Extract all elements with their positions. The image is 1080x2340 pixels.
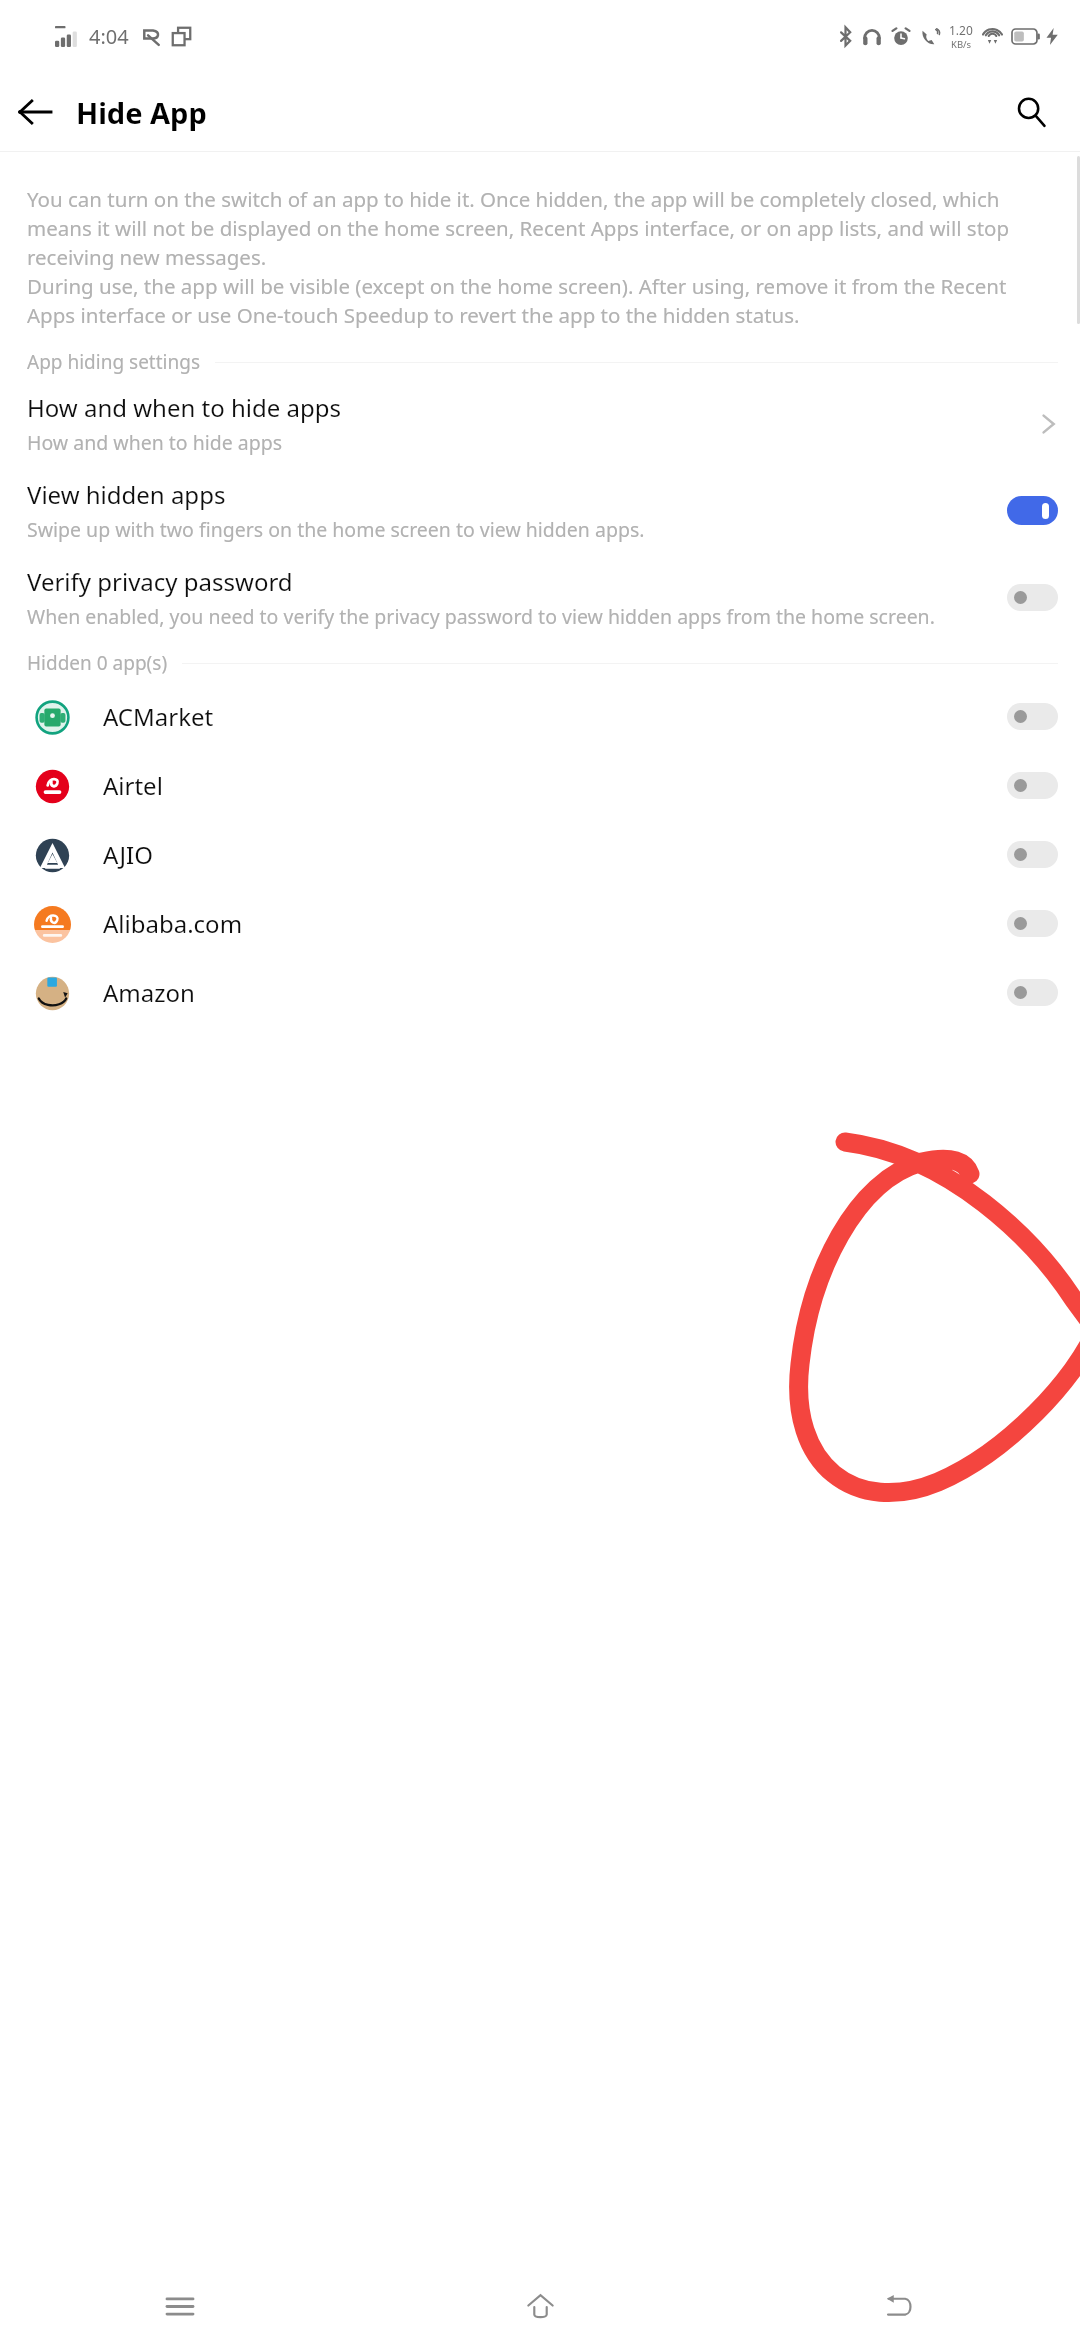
staticText: Airtel [103, 769, 1007, 802]
button[interactable]: Toggle, off [1007, 703, 1058, 730]
staticText: 4:04 [89, 23, 129, 50]
button[interactable]: View hidden apps [0, 466, 1080, 553]
staticText: How and when to hide apps [27, 429, 283, 456]
staticText: 1.20 [949, 22, 973, 38]
staticText: ACMarket [103, 700, 1007, 733]
staticText: Amazon [103, 976, 1007, 1009]
button[interactable]: ACMarket [0, 682, 1080, 751]
staticText: You can turn on the switch of an app to … [27, 185, 1053, 329]
button[interactable]: Airtel [0, 751, 1080, 820]
staticText: Verify privacy password [27, 565, 293, 598]
button[interactable]: Alibaba.com [0, 889, 1080, 958]
button[interactable]: Back [720, 2272, 1080, 2340]
staticText: View hidden apps [27, 478, 226, 511]
button[interactable]: Toggle, off [1007, 841, 1058, 868]
button[interactable]: Toggle, off [1007, 979, 1058, 1006]
staticText: AJIO [103, 838, 1007, 871]
button[interactable]: Toggle, off [1007, 910, 1058, 937]
button[interactable]: Home [360, 2272, 720, 2340]
button[interactable]: How and when to hide apps [0, 375, 1080, 466]
button[interactable]: Search [1000, 81, 1062, 143]
button[interactable]: Back [0, 77, 70, 147]
button[interactable]: Recent apps [0, 2272, 360, 2340]
button[interactable]: Verify privacy password [0, 553, 1080, 642]
button[interactable]: View hidden apps toggle, on [1007, 496, 1058, 525]
staticText: Hide App [76, 93, 207, 132]
button[interactable]: Toggle, off [1007, 772, 1058, 799]
button[interactable]: Amazon [0, 958, 1080, 1027]
button[interactable]: AJIO [0, 820, 1080, 889]
staticText: Hidden 0 app(s) [27, 650, 168, 676]
staticText: App hiding settings [27, 349, 201, 375]
staticText: KB/s [951, 38, 972, 51]
staticText: When enabled, you need to verify the pri… [27, 603, 935, 630]
staticText: Swipe up with two fingers on the home sc… [27, 516, 645, 543]
staticText: Alibaba.com [103, 907, 1007, 940]
button[interactable]: Toggle, off [1007, 584, 1058, 611]
staticText: How and when to hide apps [27, 391, 341, 424]
